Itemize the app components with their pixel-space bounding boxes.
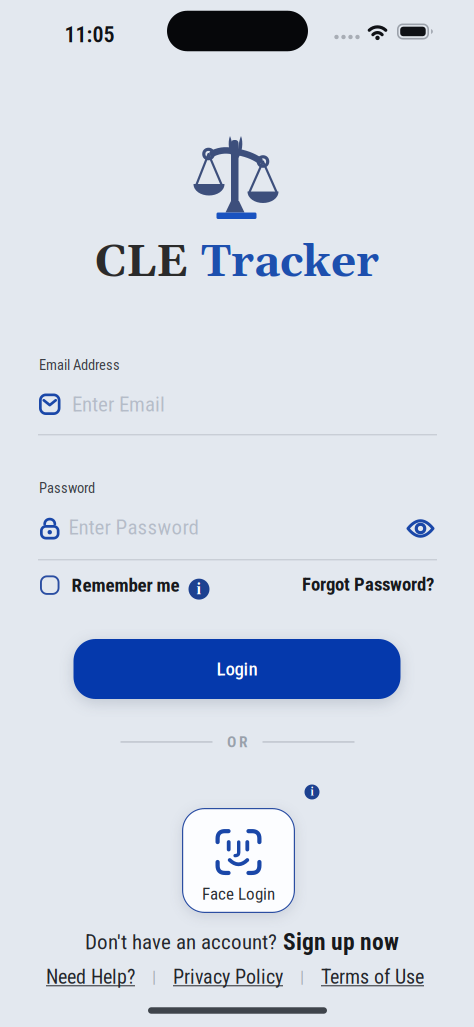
staticText: Sign up now [283,928,399,956]
staticText: Forgot Password? [302,573,434,595]
button[interactable]: Enter Email [39,391,438,418]
staticText: Tracker [201,235,379,291]
staticText: Need Help? [46,965,135,989]
button[interactable]: Face Login [182,808,295,913]
staticText: OR [227,733,248,751]
staticText: Enter Password [68,515,198,540]
staticText: 11:05 [64,22,114,48]
button[interactable]: Privacy Policy [173,965,283,989]
staticText: Password [39,479,95,496]
staticText: Login [216,658,257,680]
button[interactable]: Login [73,639,400,699]
button[interactable]: Enter Password [40,515,390,542]
staticText: Remember me [71,574,179,596]
button[interactable]: Terms of Use [321,965,424,989]
staticText: | [152,967,156,987]
button[interactable]: Remember me [40,574,179,596]
button[interactable]: Sign up now [283,928,399,956]
staticText: Face Login [202,884,275,904]
staticText: Email Address [39,356,120,373]
staticText: Terms of Use [321,965,424,989]
staticText: | [300,967,304,987]
staticText: Enter Email [72,392,165,417]
staticText: Don't have an account? [85,930,277,954]
staticText: Privacy Policy [173,965,283,989]
button[interactable]: Face Login info [304,784,319,799]
staticText: i [310,785,313,798]
button[interactable]: Need Help? [46,965,135,989]
button[interactable]: Remember me info [188,579,209,600]
staticText: i [196,580,201,598]
button[interactable]: Show password [406,517,435,539]
button[interactable]: Forgot Password? [302,573,434,595]
staticText: CLE [95,235,188,291]
